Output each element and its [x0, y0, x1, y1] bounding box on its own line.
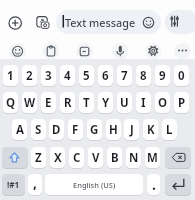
- button[interactable]: 8: [136, 65, 151, 86]
- button[interactable]: 0: [174, 65, 189, 86]
- button[interactable]: C: [69, 147, 84, 168]
- button[interactable]: [56, 10, 161, 34]
- staticText: A: [16, 122, 24, 138]
- button[interactable]: D: [49, 119, 64, 140]
- staticText: X: [54, 150, 62, 166]
- button[interactable]: I: [136, 92, 151, 113]
- staticText: D: [52, 122, 61, 138]
- button[interactable]: T: [79, 92, 94, 113]
- button[interactable]: [145, 43, 162, 60]
- button[interactable]: A: [12, 119, 27, 140]
- button[interactable]: [165, 147, 191, 168]
- button[interactable]: [112, 43, 129, 60]
- button[interactable]: [35, 14, 50, 29]
- button[interactable]: English (US): [45, 174, 143, 195]
- button[interactable]: J: [124, 119, 139, 140]
- button[interactable]: 9: [155, 65, 170, 86]
- staticText: .: [152, 175, 156, 194]
- button[interactable]: [9, 43, 26, 60]
- staticText: 3: [45, 68, 52, 84]
- button[interactable]: N: [126, 147, 141, 168]
- button[interactable]: [2, 147, 28, 168]
- staticText: C: [73, 150, 81, 166]
- staticText: J: [130, 122, 134, 138]
- button[interactable]: ,: [28, 174, 42, 195]
- staticText: B: [111, 150, 119, 166]
- staticText: ,: [33, 173, 37, 192]
- button[interactable]: Q: [3, 92, 18, 113]
- staticText: F: [72, 122, 79, 138]
- button[interactable]: L: [162, 119, 177, 140]
- button[interactable]: [76, 43, 93, 60]
- button[interactable]: G: [87, 119, 102, 140]
- staticText: E: [45, 95, 52, 111]
- staticText: Text message: [65, 15, 136, 30]
- staticText: 9: [159, 68, 166, 84]
- button[interactable]: R: [60, 92, 75, 113]
- staticText: T: [83, 95, 90, 111]
- button[interactable]: Y: [98, 92, 113, 113]
- button[interactable]: O: [155, 92, 170, 113]
- staticText: English (US): [73, 180, 116, 190]
- staticText: P: [178, 95, 186, 111]
- button[interactable]: [167, 13, 183, 29]
- button[interactable]: M: [145, 147, 160, 168]
- button[interactable]: B: [107, 147, 122, 168]
- button[interactable]: !#1: [2, 174, 25, 195]
- button[interactable]: H: [106, 119, 121, 140]
- staticText: G: [90, 122, 99, 138]
- button[interactable]: [43, 43, 60, 60]
- button[interactable]: 5: [79, 65, 94, 86]
- staticText: H: [109, 122, 118, 138]
- staticText: 8: [140, 68, 147, 84]
- button[interactable]: U: [117, 92, 132, 113]
- staticText: R: [64, 95, 72, 111]
- button[interactable]: .: [147, 174, 160, 195]
- staticText: N: [129, 150, 139, 166]
- button[interactable]: K: [143, 119, 158, 140]
- button[interactable]: [165, 174, 191, 195]
- button[interactable]: 1: [3, 65, 18, 86]
- button[interactable]: [174, 43, 191, 60]
- button[interactable]: X: [50, 147, 65, 168]
- staticText: !#1: [7, 179, 20, 190]
- staticText: U: [120, 95, 129, 111]
- staticText: 1: [7, 68, 14, 84]
- button[interactable]: 6: [98, 65, 113, 86]
- button[interactable]: S: [31, 119, 46, 140]
- button[interactable]: V: [88, 147, 103, 168]
- button[interactable]: P: [174, 92, 189, 113]
- button[interactable]: Z: [31, 147, 46, 168]
- button[interactable]: 3: [41, 65, 56, 86]
- button[interactable]: W: [22, 92, 37, 113]
- staticText: I: [141, 95, 146, 111]
- staticText: 0: [178, 68, 185, 84]
- button[interactable]: F: [68, 119, 83, 140]
- staticText: W: [24, 95, 36, 111]
- staticText: M: [147, 150, 158, 166]
- staticText: Q: [6, 95, 16, 111]
- staticText: 6: [102, 68, 109, 84]
- button[interactable]: [165, 10, 195, 34]
- button[interactable]: [7, 14, 24, 31]
- staticText: 2: [26, 68, 33, 84]
- button[interactable]: 7: [117, 65, 132, 86]
- staticText: V: [92, 150, 100, 166]
- staticText: 4: [64, 68, 71, 84]
- staticText: 7: [121, 68, 128, 84]
- staticText: S: [35, 122, 42, 138]
- button[interactable]: 2: [22, 65, 37, 86]
- staticText: L: [166, 122, 173, 138]
- button[interactable]: E: [41, 92, 56, 113]
- staticText: 5: [83, 68, 90, 84]
- button[interactable]: 4: [60, 65, 75, 86]
- staticText: Z: [35, 150, 42, 166]
- staticText: Y: [102, 95, 110, 111]
- staticText: O: [158, 95, 168, 111]
- staticText: K: [147, 122, 155, 138]
